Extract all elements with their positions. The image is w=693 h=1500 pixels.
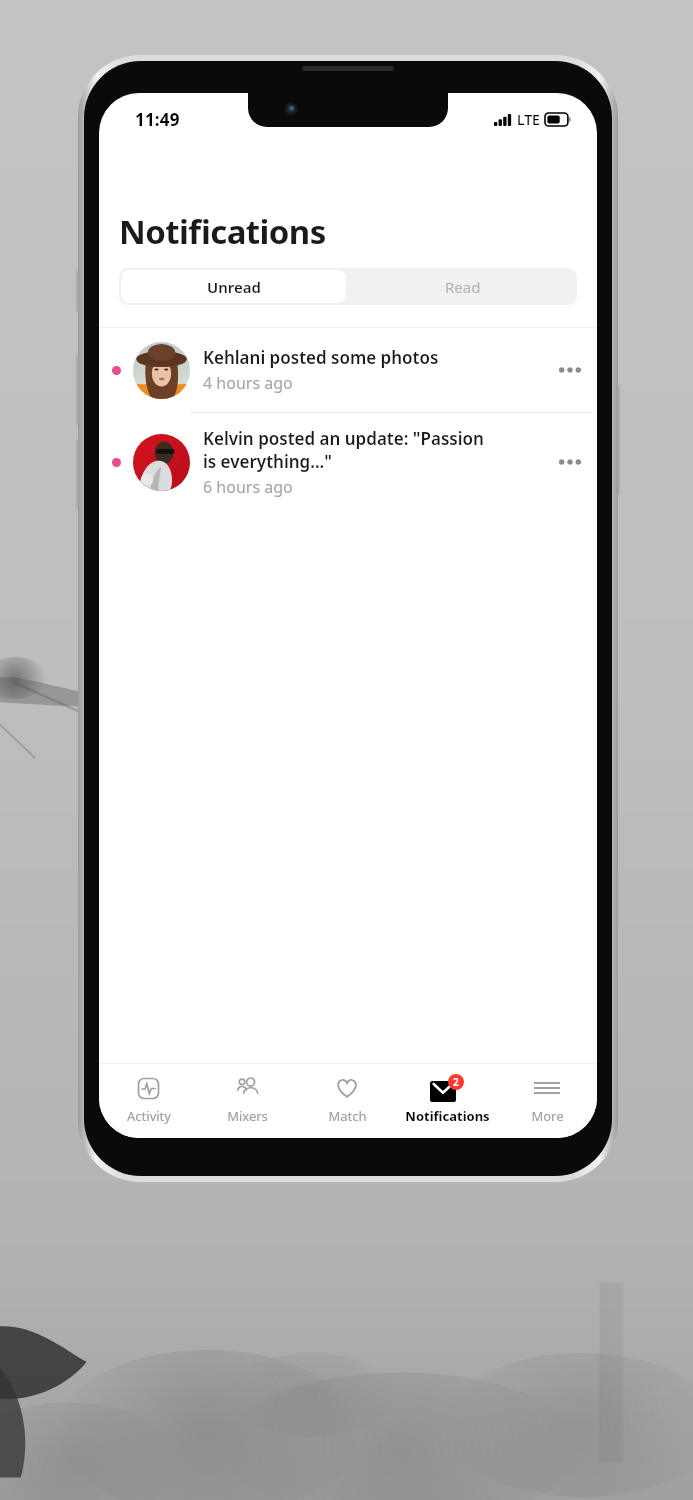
- button[interactable]: Activity: [99, 1064, 198, 1138]
- staticText: Mixers: [227, 1107, 268, 1125]
- other: Activity: [136, 1076, 161, 1101]
- staticText: Notifications: [119, 209, 326, 254]
- staticText: 2: [453, 1075, 459, 1089]
- button[interactable]: Read: [348, 268, 577, 305]
- staticText: LTE: [517, 110, 540, 129]
- staticText: Activity: [127, 1107, 171, 1125]
- staticText: 11:49: [135, 108, 180, 131]
- button[interactable]: More options: [547, 328, 593, 412]
- staticText: 4 hours ago: [203, 372, 293, 394]
- other: More: [535, 1079, 559, 1097]
- staticText: Match: [328, 1107, 367, 1125]
- staticText: Kelvin posted an update: "Passion is eve…: [203, 427, 484, 473]
- staticText: Kehlani posted some photos: [203, 346, 439, 369]
- button[interactable]: Unread: [121, 270, 346, 303]
- button[interactable]: More: [497, 1064, 597, 1138]
- button[interactable]: Notifications, 2 unread: [397, 1064, 497, 1138]
- button[interactable]: More options: [547, 413, 593, 511]
- button[interactable]: Mixers: [198, 1064, 297, 1138]
- button[interactable]: Kelvin posted an update: "Passion is eve…: [99, 413, 597, 511]
- staticText: Notifications: [405, 1107, 490, 1125]
- other: Match: [334, 1075, 360, 1101]
- staticText: More: [531, 1107, 564, 1125]
- button[interactable]: Kehlani posted some photos: [99, 328, 597, 412]
- staticText: Read: [445, 277, 481, 297]
- button[interactable]: Match: [297, 1064, 397, 1138]
- other: Notifications, 2 unread: [430, 1081, 456, 1102]
- other: Mixers: [235, 1075, 261, 1101]
- staticText: Unread: [207, 277, 261, 297]
- staticText: 6 hours ago: [203, 476, 293, 498]
